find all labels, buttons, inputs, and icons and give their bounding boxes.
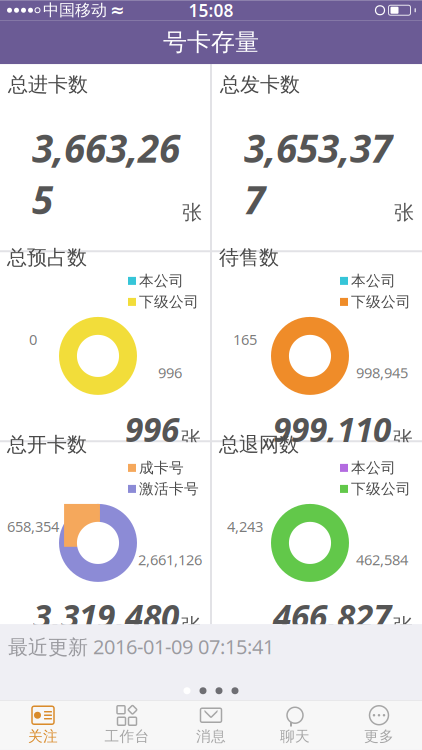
button[interactable]: 更多 (337, 701, 421, 750)
staticText: 张 (394, 200, 414, 225)
staticText: 总预占数 (7, 245, 87, 270)
staticText: 激活卡号 (139, 480, 199, 498)
staticText: 462,584 (356, 550, 408, 569)
staticText: 张 (181, 614, 201, 638)
button[interactable]: 总开卡数 (0, 442, 210, 624)
staticText: 3,319,480 (33, 594, 179, 638)
staticText: 本公司 (351, 272, 396, 290)
staticText: 张 (393, 427, 413, 451)
staticText: 成卡号 (139, 459, 184, 477)
staticText: 张 (393, 614, 413, 638)
button[interactable]: 聊天 (253, 701, 337, 750)
staticText: 15:08 (188, 0, 233, 22)
staticText: 总进卡数 (8, 72, 88, 97)
staticText: 998,945 (356, 363, 408, 382)
staticText: 张 (182, 200, 202, 225)
staticText: 总开卡数 (7, 432, 87, 457)
staticText: 总退网数 (219, 432, 299, 457)
staticText: 下级公司 (351, 480, 411, 498)
staticText: 下级公司 (139, 293, 199, 311)
button[interactable]: 总进卡数 (0, 64, 210, 250)
staticText: 总发卡数 (220, 72, 300, 97)
button[interactable]: 总预占数 (0, 252, 210, 440)
staticText: 本公司 (139, 272, 184, 290)
staticText: 号卡存量 (163, 27, 259, 57)
staticText: 中国移动 (43, 0, 107, 20)
staticText: 999,110 (273, 407, 391, 451)
staticText: 996 (125, 407, 179, 451)
staticText: 3,653,377 (244, 122, 392, 225)
staticText: 下级公司 (351, 293, 411, 311)
staticText: 996 (158, 363, 182, 382)
button[interactable]: 工作台 (85, 701, 169, 750)
staticText: 658,354 (7, 516, 59, 536)
button[interactable]: 总发卡数 (212, 64, 422, 250)
staticText: 更多 (364, 727, 394, 745)
staticText: ≈ (110, 0, 125, 20)
button[interactable]: 消息 (169, 701, 253, 750)
button[interactable]: 总退网数 (212, 442, 422, 624)
staticText: 3,663,265 (32, 122, 180, 225)
staticText: 最近更新 2016-01-09 07:15:41 (8, 633, 274, 660)
button[interactable]: 待售数 (212, 252, 422, 440)
staticText: 关注 (28, 727, 58, 745)
staticText: 本公司 (351, 459, 396, 477)
staticText: 2,661,126 (138, 550, 202, 569)
staticText: 待售数 (219, 245, 279, 270)
staticText: 张 (181, 427, 201, 451)
button[interactable]: 关注 (1, 701, 85, 750)
staticText: 4,243 (227, 516, 263, 536)
staticText: 工作台 (104, 727, 149, 745)
staticText: 0 (29, 329, 37, 349)
staticText: 165 (233, 329, 257, 349)
staticText: 聊天 (280, 727, 310, 745)
staticText: 消息 (196, 727, 226, 745)
staticText: 466,827 (273, 594, 391, 638)
